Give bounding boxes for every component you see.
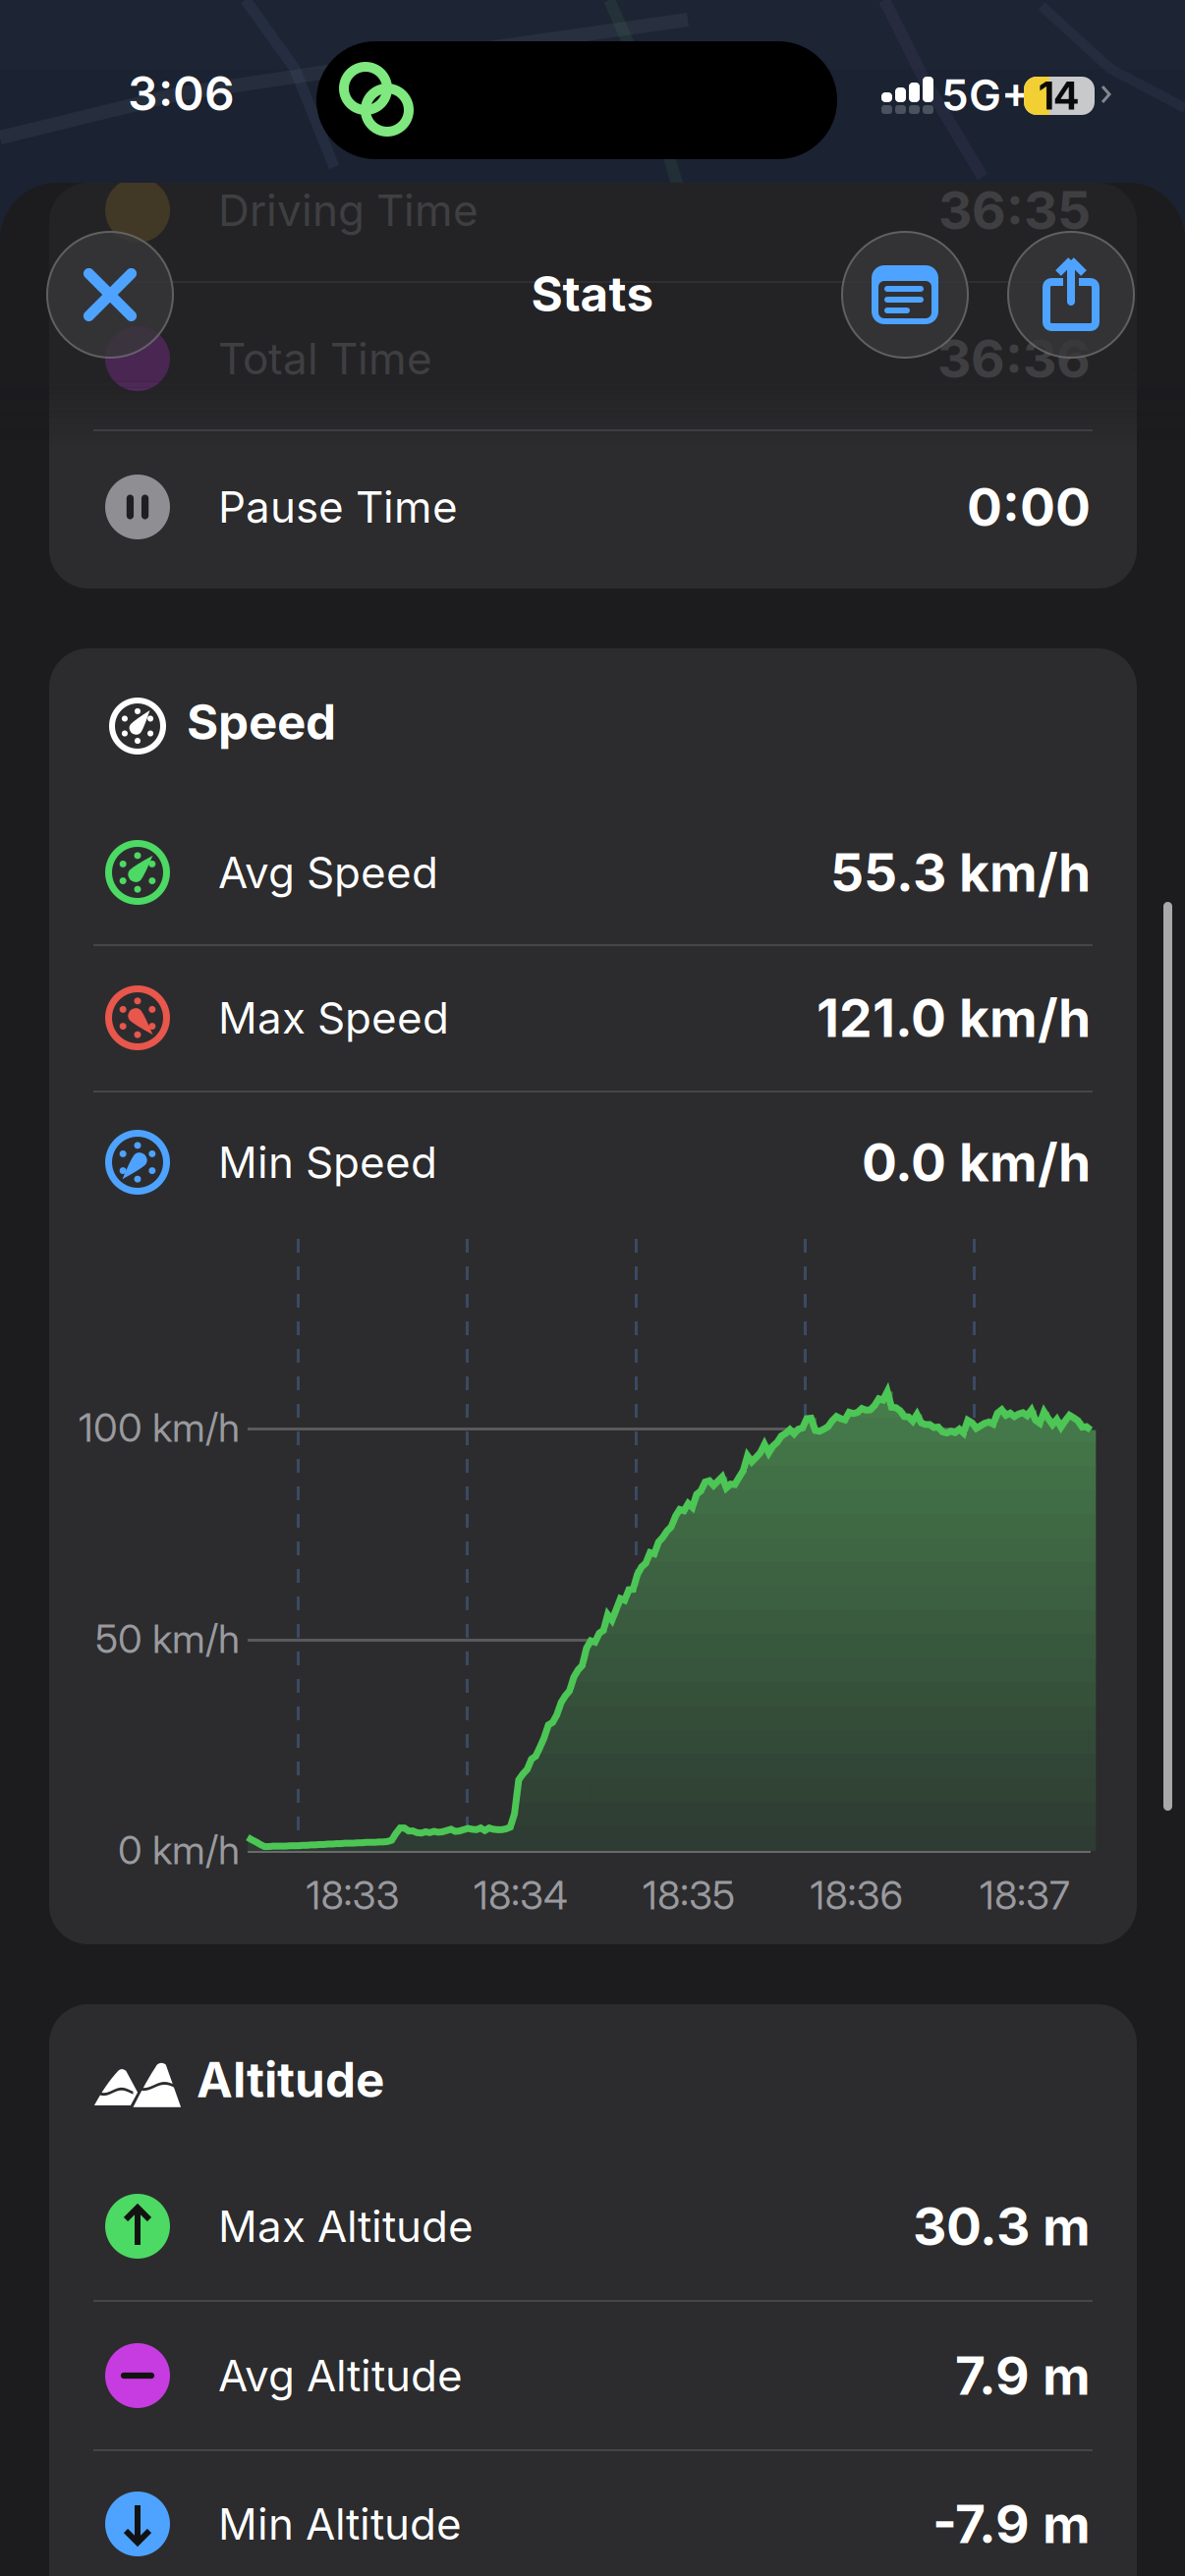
staticText: 18:37 xyxy=(980,1871,1070,1919)
staticText: Total Time xyxy=(218,332,432,385)
staticText: 18:34 xyxy=(474,1871,568,1919)
staticText: 121.0 km/h xyxy=(817,986,1091,1049)
button[interactable]: Notes xyxy=(841,231,969,359)
staticText: 55.3 km/h xyxy=(830,841,1091,904)
staticText: 100 km/h xyxy=(79,1404,240,1451)
staticText: 18:35 xyxy=(643,1871,735,1919)
staticText: Driving Time xyxy=(218,184,479,236)
button[interactable]: Close xyxy=(46,231,174,359)
staticText: Min Altitude xyxy=(218,2498,462,2550)
staticText: 18:36 xyxy=(810,1871,903,1919)
button[interactable]: Share xyxy=(1007,231,1135,359)
staticText: 36:35 xyxy=(938,179,1091,242)
staticText: Altitude xyxy=(197,2050,384,2109)
staticText: -7.9 m xyxy=(932,2492,1091,2556)
staticText: 18:33 xyxy=(306,1871,399,1919)
staticText: Speed xyxy=(187,693,336,751)
staticText: 0:00 xyxy=(967,475,1091,539)
staticText: Max Altitude xyxy=(218,2200,474,2252)
staticText: 30.3 m xyxy=(913,2195,1091,2258)
staticText: Avg Speed xyxy=(218,846,438,899)
staticText: 3:06 xyxy=(128,65,235,122)
staticText: 7.9 m xyxy=(955,2344,1091,2407)
staticText: Max Speed xyxy=(218,992,449,1044)
staticText: 50 km/h xyxy=(95,1615,240,1663)
staticText: Stats xyxy=(531,264,654,323)
staticText: Avg Altitude xyxy=(218,2349,463,2402)
staticText: 36:36 xyxy=(937,327,1091,390)
staticText: 0.0 km/h xyxy=(862,1131,1091,1194)
staticText: 0 km/h xyxy=(118,1826,240,1874)
staticText: Pause Time xyxy=(218,481,458,533)
staticText: 14 xyxy=(1039,73,1079,119)
staticText: 5G+ xyxy=(941,69,1031,121)
staticText: Min Speed xyxy=(218,1136,437,1188)
